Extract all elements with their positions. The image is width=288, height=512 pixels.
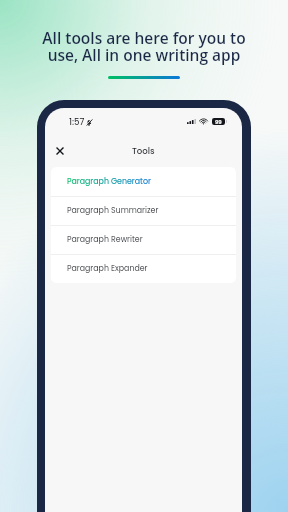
button[interactable]: Paragraph Summarizer [51,196,236,225]
staticText: Paragraph Generator [67,176,151,187]
staticText: Paragraph Expander [67,263,148,274]
button[interactable]: Paragraph Rewriter [51,225,236,254]
button[interactable]: Close [48,139,72,163]
staticText: Tools [132,145,155,157]
staticText: All tools are here for you to use, All i… [42,27,246,65]
button[interactable]: Paragraph Generator [51,167,236,196]
staticText: 1:57 [69,116,85,128]
staticText: Paragraph Summarizer [67,205,159,216]
staticText: 99 [215,118,222,125]
button[interactable]: Paragraph Expander [51,254,236,283]
staticText: Paragraph Rewriter [67,234,143,245]
